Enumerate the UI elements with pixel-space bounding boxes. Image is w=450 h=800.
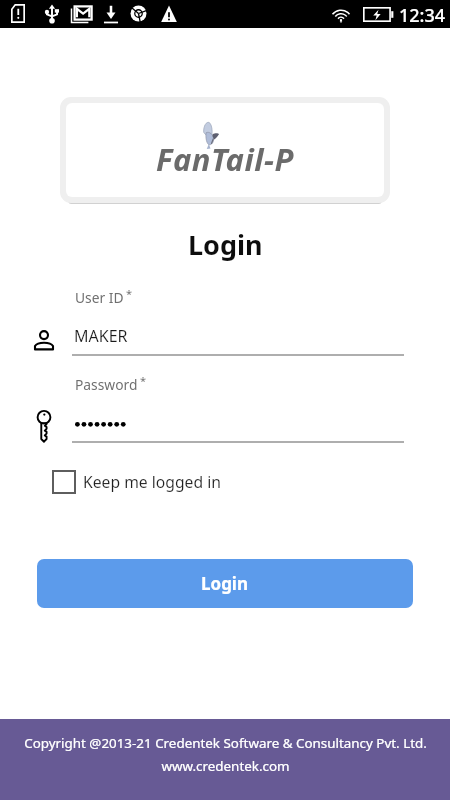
staticText: Password xyxy=(75,375,138,394)
button[interactable]: Password xyxy=(72,371,404,445)
button[interactable]: User ID xyxy=(72,284,404,358)
staticText: 12:34 xyxy=(399,3,446,28)
staticText: * xyxy=(140,373,147,388)
staticText: * xyxy=(126,286,133,301)
staticText: Login xyxy=(188,226,263,263)
staticText: Copyright @2013-21 Credentek Software & … xyxy=(24,734,427,752)
staticText: MAKER xyxy=(74,325,128,347)
staticText: User ID xyxy=(75,288,124,307)
button[interactable]: Login xyxy=(37,559,413,608)
staticText: Login xyxy=(201,572,249,595)
other: Password xyxy=(36,412,52,442)
button[interactable]: Keep me logged in xyxy=(52,466,221,497)
staticText: www.credentek.com xyxy=(161,757,290,775)
other: User account xyxy=(34,330,54,350)
staticText: FanTail-P xyxy=(156,138,294,180)
staticText: Keep me logged in xyxy=(83,471,221,492)
